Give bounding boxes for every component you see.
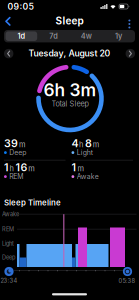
staticText: Deep: [2, 254, 15, 261]
staticText: 4: [71, 137, 78, 150]
button[interactable]: [0, 0, 139, 300]
button[interactable]: [123, 267, 132, 276]
staticText: Deep: [9, 148, 26, 157]
button[interactable]: 4w: [81, 32, 92, 41]
staticText: m: [28, 164, 35, 173]
staticText: 1y: [115, 32, 122, 41]
staticText: 6h 3m: [43, 79, 96, 100]
staticText: Total Sleep: [51, 99, 88, 108]
button[interactable]: [121, 17, 137, 31]
staticText: m: [93, 140, 100, 149]
staticText: h: [10, 164, 14, 173]
staticText: 1: [4, 161, 9, 174]
staticText: Sleep Timeline: [4, 198, 61, 207]
staticText: Awake: [2, 211, 19, 218]
staticText: 39: [4, 137, 18, 150]
button[interactable]: [4, 267, 14, 276]
staticText: h: [79, 140, 83, 149]
staticText: 1d: [17, 32, 25, 41]
button[interactable]: 1y: [115, 32, 122, 41]
staticText: 16: [16, 161, 28, 174]
staticText: Light: [2, 240, 14, 247]
staticText: REM: [2, 226, 14, 233]
staticText: Light: [77, 148, 93, 157]
staticText: 4w: [81, 32, 92, 41]
staticText: m: [19, 140, 26, 149]
staticText: REM: [9, 172, 23, 181]
staticText: 09:05: [7, 1, 33, 12]
staticText: 8: [85, 137, 92, 150]
staticText: Awake: [77, 172, 99, 181]
staticText: Sleep: [55, 15, 83, 27]
staticText: 7d: [49, 32, 58, 41]
button[interactable]: [126, 49, 135, 58]
button[interactable]: [4, 49, 13, 58]
button[interactable]: 7d: [49, 32, 58, 41]
staticText: 23:34: [0, 277, 17, 284]
staticText: 1: [71, 161, 76, 174]
staticText: m: [77, 164, 84, 173]
staticText: 05:38: [118, 277, 135, 284]
button[interactable]: [6, 31, 37, 41]
staticText: Tuesday, August 20: [28, 48, 110, 59]
